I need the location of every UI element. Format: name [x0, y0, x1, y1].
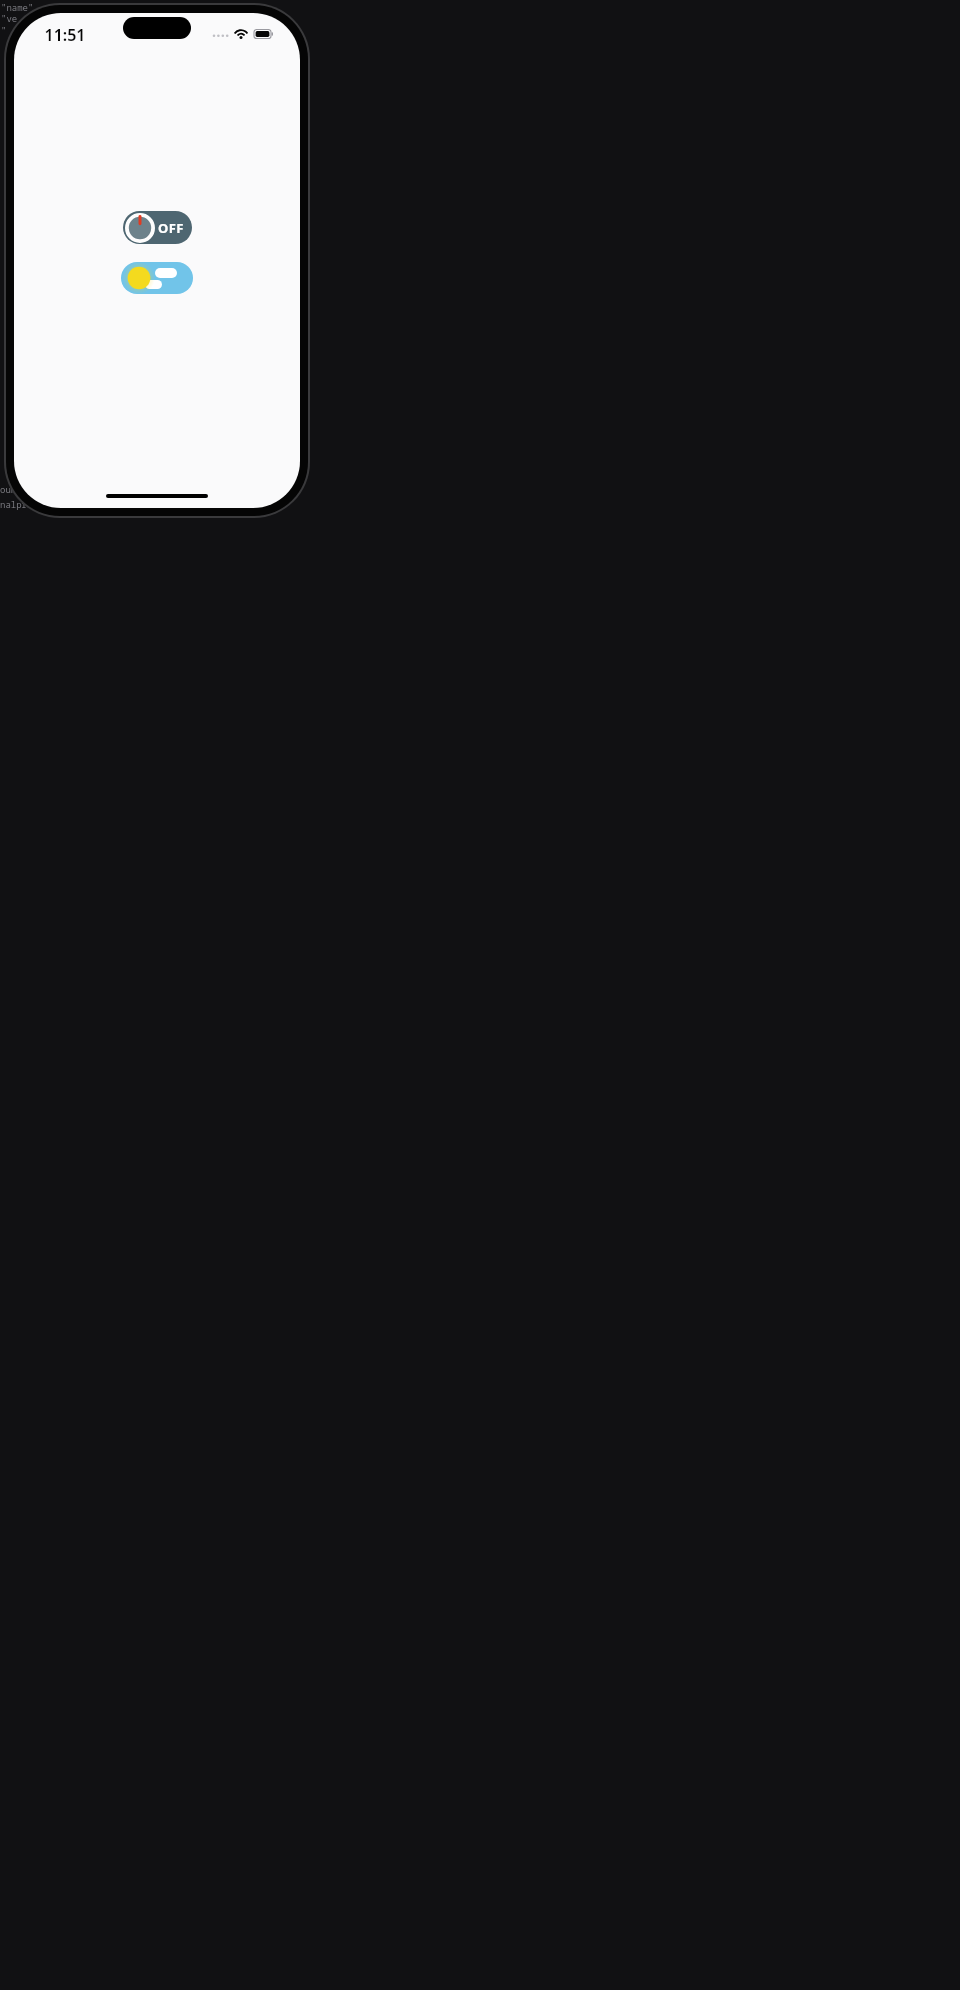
button[interactable]: Day mode switch, on	[121, 262, 193, 294]
staticText: 11:51	[44, 24, 86, 46]
staticText: ound	[0, 483, 22, 495]
staticText: "	[1, 24, 7, 36]
staticText: OFF	[158, 219, 184, 237]
staticText: "name"	[1, 1, 34, 13]
staticText: "ve	[1, 12, 18, 24]
staticText: nalpralauo	[0, 498, 55, 510]
button[interactable]: Power switch, off	[123, 211, 192, 244]
